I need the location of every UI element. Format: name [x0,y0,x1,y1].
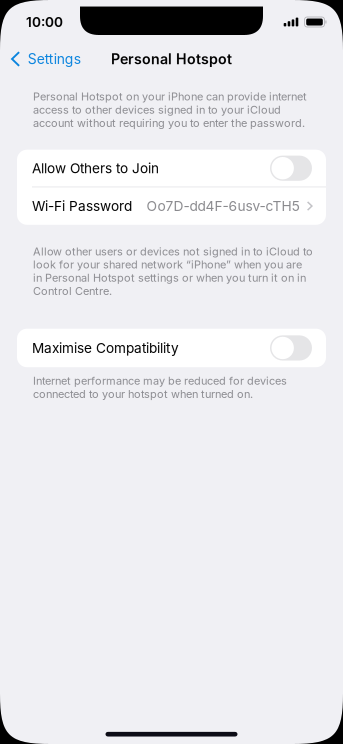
staticText: 10:00 [26,14,63,30]
staticText: Maximise Compatibility [32,340,179,356]
button[interactable]: Settings [0,45,89,73]
staticText: Personal Hotspot [111,50,232,67]
button[interactable]: Maximise Compatibility [17,329,326,367]
staticText: Internet performance may be reduced for … [33,374,287,401]
staticText: Allow Others to Join [32,160,159,176]
staticText: Personal Hotspot on your iPhone can prov… [33,90,307,130]
button[interactable]: Wi-Fi Password [17,187,326,225]
staticText: Allow other users or devices not signed … [33,245,313,298]
staticText: Oo7D-dd4F-6usv-cTH5 [146,198,299,214]
staticText: Settings [28,51,81,67]
staticText: Wi-Fi Password [32,198,132,214]
button[interactable]: Allow Others to Join [17,150,326,187]
